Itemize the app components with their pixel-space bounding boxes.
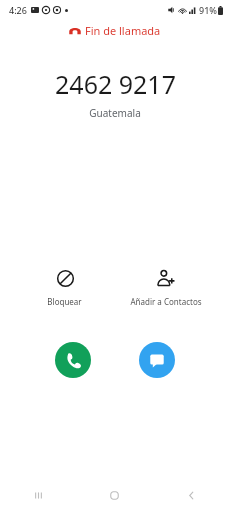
button[interactable]: Llamar: [55, 342, 91, 378]
staticText: 2462 9217: [55, 67, 176, 101]
button[interactable]: Recientes: [0, 478, 76, 512]
button[interactable]: Fin de llamada: [63, 21, 167, 40]
button[interactable]: Mensaje: [139, 342, 175, 378]
button[interactable]: Bloquear: [17, 265, 112, 309]
staticText: Fin de llamada: [85, 23, 161, 38]
staticText: 91%: [199, 4, 217, 16]
button[interactable]: Atrás: [153, 478, 230, 512]
staticText: Bloquear: [47, 296, 82, 307]
staticText: Añadir a Contactos: [130, 296, 202, 307]
button[interactable]: Añadir a Contactos: [118, 265, 213, 309]
staticText: Guatemala: [89, 106, 141, 120]
button[interactable]: Inicio: [76, 478, 153, 512]
staticText: 4:26: [9, 4, 27, 16]
